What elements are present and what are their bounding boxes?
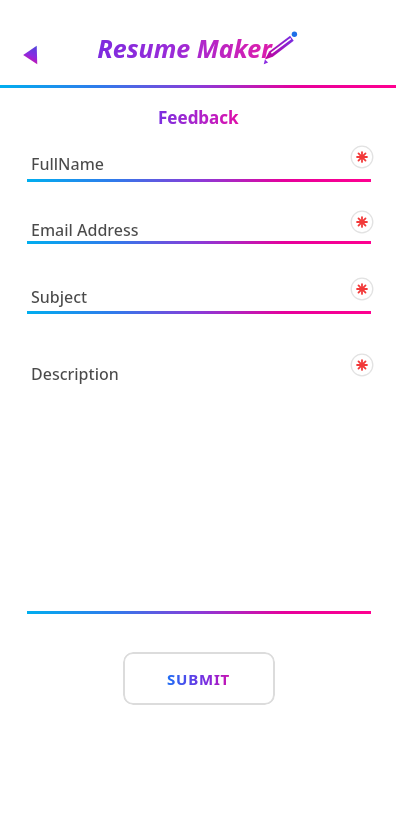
staticText: Description xyxy=(31,363,119,385)
button[interactable]: SUBMIT xyxy=(123,652,275,705)
button[interactable]: Required field xyxy=(350,210,374,234)
button[interactable]: Required field xyxy=(350,145,374,169)
staticText: SUBMIT xyxy=(167,669,231,689)
staticText: Feedback xyxy=(158,106,239,129)
staticText: FullName xyxy=(31,153,105,175)
staticText: Email Address xyxy=(31,219,139,241)
staticText: Subject xyxy=(31,286,88,308)
button[interactable]: Required field xyxy=(350,277,374,301)
staticText: Resume Maker xyxy=(97,31,272,65)
button[interactable]: Back xyxy=(14,38,48,72)
button[interactable]: Required field xyxy=(350,353,374,377)
